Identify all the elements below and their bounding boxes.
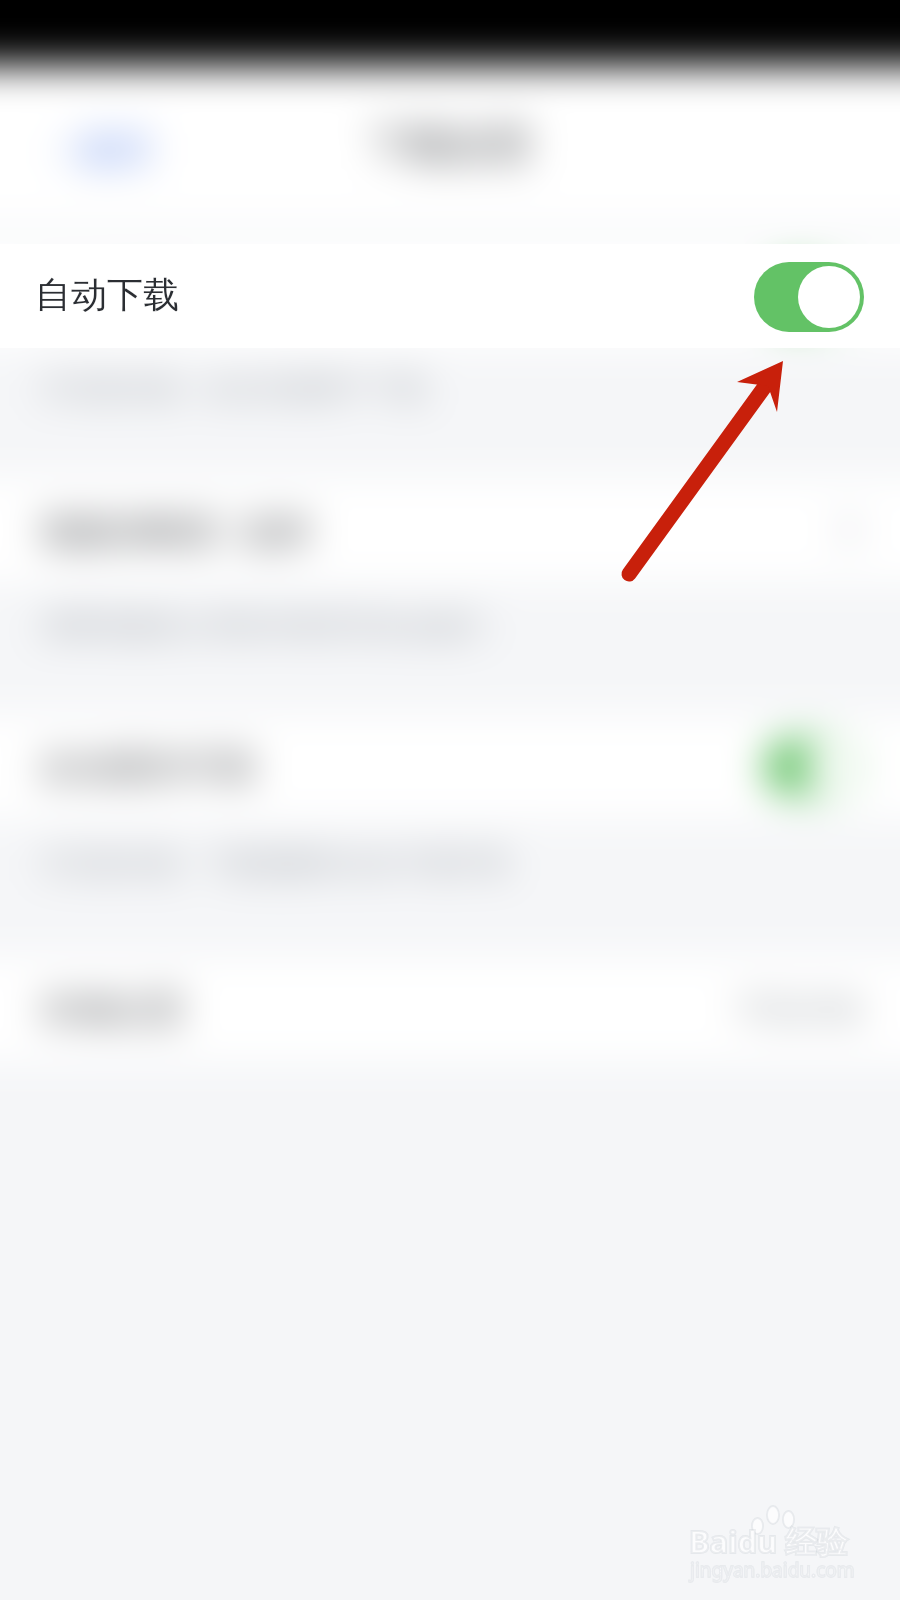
staticText: Baidu 经验 <box>689 1520 848 1562</box>
staticText: Baidu 经验 <box>689 1520 848 1562</box>
staticText: 视频清晰度 选择 <box>40 506 311 555</box>
staticText: jingyan.baidu.com <box>690 1557 855 1583</box>
button[interactable]: 视频清晰度 选择 <box>0 478 900 582</box>
staticText: 下载设置 <box>368 120 532 172</box>
staticText: 自动缓存字幕 <box>40 745 256 790</box>
button[interactable]: 自动下载开关 <box>754 262 864 332</box>
button[interactable]: 存储位置 <box>0 957 900 1061</box>
staticText: 自动下载 <box>35 272 179 317</box>
staticText: jingyan.baidu.com <box>690 1557 855 1583</box>
button[interactable]: 自动缓存字幕 <box>0 715 900 819</box>
button[interactable]: ‹ 返回 <box>58 124 151 173</box>
button[interactable]: 自动下载 <box>0 244 900 348</box>
staticText: 存储位置 <box>40 987 184 1032</box>
staticText: 自动下载 <box>40 274 184 319</box>
button[interactable]: 自动下载 <box>0 244 900 348</box>
